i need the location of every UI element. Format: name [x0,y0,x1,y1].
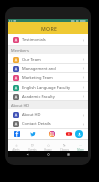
button[interactable]: MORE [8,22,88,34]
staticText: Our Team [22,57,82,63]
button[interactable]: Instagram [49,131,55,137]
staticText: Contact Details [22,121,82,127]
button[interactable]: Testimonials [8,34,88,46]
button[interactable]: Facebook [14,131,20,137]
staticText: Management and Administration Team [22,66,82,72]
button[interactable]: Alerts [8,140,24,151]
button[interactable]: Classes [56,140,72,151]
button[interactable]: Academic Faculty [8,92,88,101]
button[interactable]: Chat [75,130,83,138]
button[interactable]: Twitter [30,131,36,137]
staticText: Alerts [12,148,20,151]
staticText: MORE [41,25,58,32]
button[interactable]: English Language Faculty [8,83,88,92]
button[interactable]: More [72,140,88,151]
button[interactable]: Home [40,140,56,151]
staticText: English Language Faculty [22,85,82,91]
button[interactable]: Our Team [8,55,88,64]
button[interactable]: Contact Details [8,119,88,129]
staticText: Testimonials [22,37,82,43]
staticText: Members [11,48,29,53]
button[interactable]: Marketing Team [8,73,88,82]
staticText: Home [44,148,52,151]
staticText: Marketing Team [22,75,82,81]
button[interactable]: About HD [8,110,88,120]
staticText: About HD [11,103,30,108]
button[interactable]: Management and Administration Team [8,64,88,73]
staticText: More [77,148,84,151]
staticText: Classes [60,148,69,151]
button[interactable]: Events [24,140,40,151]
button[interactable]: YouTube [66,131,72,137]
staticText: Events [28,148,37,151]
staticText: Academic Faculty [22,94,82,100]
staticText: About HD [22,112,82,118]
